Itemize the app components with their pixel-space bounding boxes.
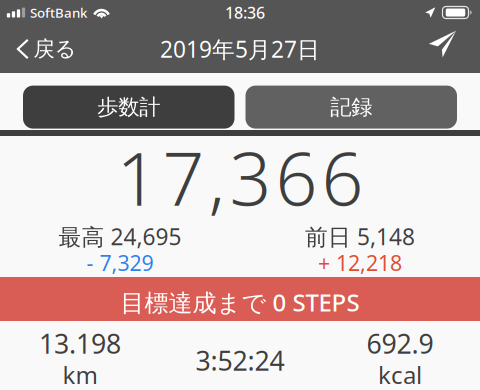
button[interactable]: 共有 <box>429 25 480 73</box>
staticText: + 12,218 <box>318 249 402 277</box>
staticText: 前日 5,148 <box>305 221 415 251</box>
staticText: kcal <box>378 359 422 390</box>
staticText: km <box>62 359 97 390</box>
button[interactable]: 歩数計 <box>23 86 234 129</box>
staticText: 13.198 <box>39 326 121 361</box>
staticText: 18:36 <box>225 2 265 23</box>
staticText: SoftBank <box>30 4 87 21</box>
staticText: 目標達成まで 0 STEPS <box>120 286 359 318</box>
staticText: 戻る <box>33 36 76 62</box>
button[interactable]: 記録 <box>245 86 457 129</box>
staticText: 最高 24,695 <box>58 221 181 251</box>
staticText: 記録 <box>330 94 372 120</box>
staticText: - 7,329 <box>86 249 153 277</box>
staticText: 692.9 <box>366 326 433 361</box>
staticText: 3:52:24 <box>195 343 284 378</box>
staticText: 2019年5月27日 <box>160 34 320 64</box>
button[interactable]: 戻る <box>0 25 88 73</box>
staticText: 17,366 <box>116 129 363 226</box>
staticText: 歩数計 <box>97 94 160 120</box>
